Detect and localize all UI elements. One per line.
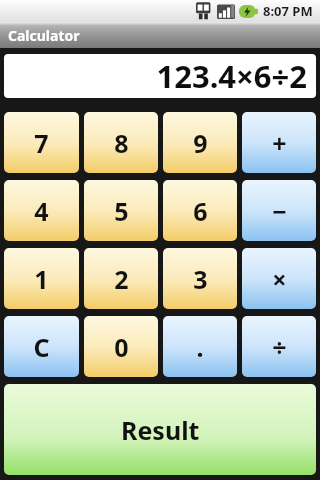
button[interactable]: 7 [4, 112, 79, 173]
staticText: 1 [34, 262, 49, 296]
button[interactable]: 2 [84, 248, 158, 309]
button[interactable]: Multiply [242, 248, 316, 309]
staticText: + [272, 126, 287, 160]
staticText: 4 [34, 194, 49, 228]
staticText: . [196, 330, 204, 364]
staticText: 8 [114, 126, 129, 160]
staticText: 9 [193, 126, 208, 160]
staticText: 6 [193, 194, 208, 228]
staticText: 0 [114, 330, 129, 364]
staticText: 8:07 PM [263, 2, 313, 20]
button[interactable]: 5 [84, 180, 158, 241]
button[interactable]: 4 [4, 180, 79, 241]
button[interactable]: Decimal point [163, 316, 237, 377]
staticText: Result [121, 413, 200, 447]
button[interactable]: 1 [4, 248, 79, 309]
staticText: 3 [193, 262, 208, 296]
staticText: × [272, 262, 287, 296]
staticText: C [33, 330, 50, 364]
staticText: 7 [34, 126, 49, 160]
button[interactable]: 9 [163, 112, 237, 173]
button[interactable]: 6 [163, 180, 237, 241]
button[interactable]: Result [4, 384, 316, 475]
staticText: 2 [114, 262, 129, 296]
button[interactable]: 0 [84, 316, 158, 377]
button[interactable]: Plus [242, 112, 316, 173]
staticText: Calculator [8, 26, 80, 45]
staticText: ÷ [272, 330, 287, 364]
staticText: 123.4×6÷2 [156, 55, 307, 97]
staticText: − [272, 194, 287, 228]
button[interactable]: 8 [84, 112, 158, 173]
staticText: 5 [114, 194, 129, 228]
button[interactable]: C [4, 316, 79, 377]
button[interactable]: Minus [242, 180, 316, 241]
button[interactable]: Divide [242, 316, 316, 377]
button[interactable]: 3 [163, 248, 237, 309]
